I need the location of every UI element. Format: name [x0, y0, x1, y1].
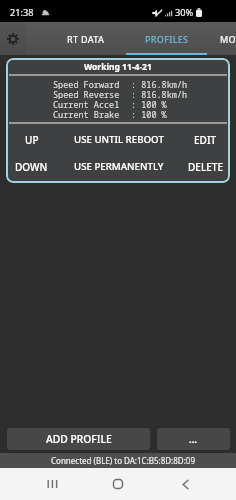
button[interactable]: EDIT — [180, 133, 230, 144]
button[interactable]: MOTOR CONFIG — [207, 22, 236, 55]
button[interactable]: PROFILES — [126, 22, 207, 55]
staticText: UP — [25, 133, 39, 144]
staticText: 21:38 — [10, 6, 34, 19]
staticText: Connected (BLE) to DA:1C:B5:8D:8D:09 — [51, 455, 195, 466]
staticText: 30% — [175, 6, 194, 19]
staticText: DOWN — [15, 160, 48, 171]
staticText: Current Accel — [53, 99, 120, 109]
staticText: MOTOR CONFIG — [220, 33, 236, 45]
button[interactable]: Recents — [13, 468, 91, 500]
button[interactable]: ADD PROFILE — [7, 428, 150, 450]
button[interactable]: UP — [6, 133, 57, 144]
staticText: Speed Reverse — [53, 89, 120, 99]
staticText: Working 11-4-21 — [84, 61, 152, 72]
staticText: : 100 % — [131, 109, 167, 119]
staticText: EDIT — [194, 133, 217, 144]
button[interactable]: USE UNTIL REBOOT — [57, 133, 180, 144]
button[interactable]: USE PERMANENTLY — [57, 160, 180, 171]
button[interactable]: RT DATA — [45, 22, 126, 55]
staticText: ... — [189, 433, 198, 446]
staticText: Current Brake — [53, 109, 120, 119]
staticText: : 816.8km/h — [131, 89, 188, 99]
button[interactable]: Settings — [0, 22, 25, 55]
staticText: : 100 % — [131, 99, 167, 109]
staticText: ADD PROFILE — [46, 432, 112, 446]
staticText: PROFILES — [145, 33, 189, 45]
button[interactable]: DOWN — [6, 160, 57, 171]
button[interactable]: More options — [157, 428, 230, 450]
button[interactable]: Home — [79, 468, 157, 500]
button[interactable]: Back — [146, 468, 224, 500]
button[interactable]: DELETE — [180, 160, 230, 171]
staticText: USE UNTIL REBOOT — [74, 133, 164, 144]
staticText: : 816.8km/h — [131, 79, 188, 89]
staticText: Speed Forward — [53, 79, 120, 89]
staticText: RT DATA — [67, 33, 105, 45]
staticText: USE PERMANENTLY — [74, 160, 164, 171]
staticText: DELETE — [188, 160, 223, 171]
